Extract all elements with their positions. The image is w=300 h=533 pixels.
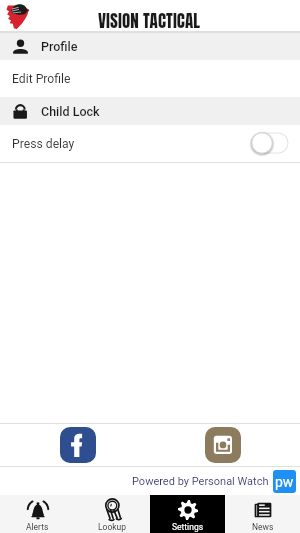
button[interactable]: Child Lock [0,97,300,125]
button[interactable]: Settings [150,495,225,533]
button[interactable]: Press delay [0,125,300,162]
button[interactable]: Facebook [60,427,96,463]
staticText: Profile [41,39,78,54]
button[interactable]: Edit Profile [0,60,300,97]
staticText: News [252,522,274,532]
staticText: Edit Profile [12,72,71,86]
staticText: Press delay [12,137,75,151]
staticText: Lookup [98,522,127,532]
staticText: Child Lock [41,104,100,119]
staticText: VISION TACTICAL [98,8,201,34]
button[interactable]: Personal Watch [273,470,296,493]
staticText: Alerts [26,522,49,532]
button[interactable]: Alerts [0,495,75,533]
button[interactable]: Instagram [205,427,241,463]
button[interactable]: Lookup [75,495,150,533]
staticText: Powered by Personal Watch [132,475,269,488]
button[interactable]: News [225,495,300,533]
button[interactable]: Profile [0,33,300,60]
other: Press delay toggle [251,132,289,154]
staticText: Settings [172,522,204,532]
staticText: pw [275,474,294,490]
